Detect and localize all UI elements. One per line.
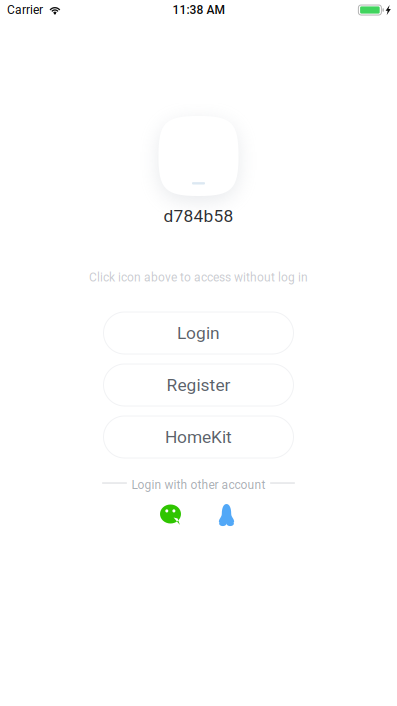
staticText: Register [166,375,230,395]
staticText: HomeKit [165,427,232,447]
staticText: Login [177,323,220,343]
button[interactable]: HomeKit [103,416,293,458]
staticText: Click icon above to access without log i… [89,270,308,285]
staticText: d784b58 [163,206,233,226]
staticText: Carrier [7,3,43,17]
button[interactable]: Login [103,312,293,354]
staticText: Login with other account [131,478,265,492]
button[interactable]: Log in with QQ [215,503,237,527]
staticText: 11:38 AM [172,3,224,17]
button[interactable]: Register [103,364,293,406]
button[interactable]: Log in with WeChat [159,503,181,527]
